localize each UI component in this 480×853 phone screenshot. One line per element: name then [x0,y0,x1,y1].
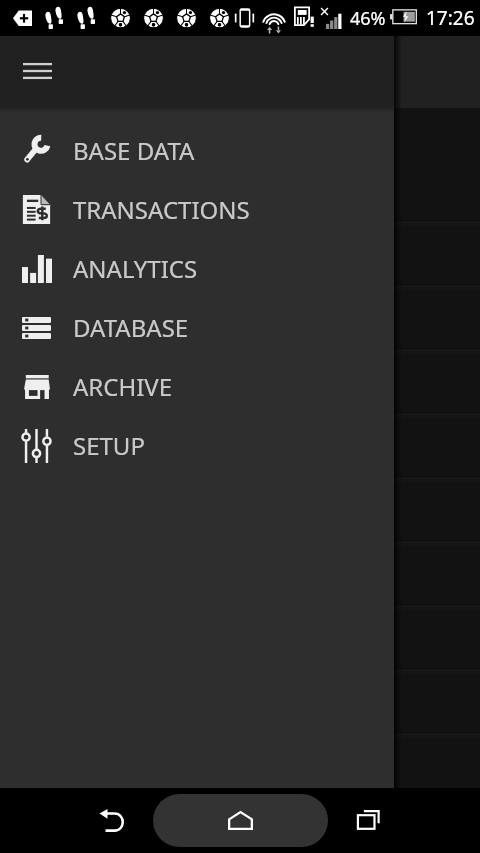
button[interactable]: Back [87,796,135,844]
button[interactable] [0,610,480,668]
button[interactable]: ARCHIVE [0,357,394,416]
button[interactable] [0,290,480,348]
button[interactable] [0,226,480,284]
staticText: ANALYTICS [73,252,198,285]
button[interactable]: DATABASE [0,298,394,357]
staticText: SETUP [73,429,145,462]
button[interactable]: ANALYTICS [0,239,394,298]
button[interactable] [0,418,480,476]
staticText: DATABASE [73,311,189,344]
button[interactable] [0,354,480,412]
button[interactable]: TRANSACTIONS [0,180,394,239]
staticText: ARCHIVE [73,370,173,403]
button[interactable]: Open navigation menu [13,47,61,95]
staticText: 17:26 [426,5,475,31]
button[interactable] [0,546,480,604]
staticText: 46% [350,6,386,31]
button[interactable]: Recent apps [344,796,392,844]
button[interactable] [0,802,480,853]
button[interactable] [0,162,480,220]
button[interactable] [0,738,480,796]
staticText: TRANSACTIONS [73,193,250,226]
button[interactable]: SETUP [0,416,394,475]
button[interactable] [0,482,480,540]
staticText: BASE DATA [73,134,195,167]
button[interactable]: BASE DATA [0,121,394,180]
button[interactable] [0,674,480,732]
button[interactable]: Home [153,794,328,847]
